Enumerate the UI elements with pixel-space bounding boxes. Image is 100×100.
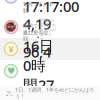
staticText: 1日、1週間、1年をめどにがんばろう！ xyxy=(15,86,94,100)
staticText: 延びた寿命 xyxy=(23,29,48,36)
button[interactable]: ¥ xyxy=(0,38,100,60)
button[interactable]: ♥ xyxy=(0,60,100,82)
staticText: 16日0時間27分 xyxy=(23,36,54,100)
button[interactable]: 🚭 xyxy=(0,16,100,38)
staticText: 96,462円 xyxy=(23,42,54,81)
staticText: 節約できた金額 xyxy=(23,22,38,42)
staticText: ※価格は変更される場合があります。 xyxy=(40,17,56,42)
staticText: 禁煙できた本数 xyxy=(23,1,53,14)
staticText: ♥ xyxy=(7,66,15,76)
button[interactable]: ⏱ xyxy=(0,0,100,16)
staticText: 209日17:17:00 xyxy=(23,0,79,16)
staticText: 4,194本 xyxy=(23,14,51,53)
staticText: 🚭 xyxy=(5,22,17,32)
staticText: ¥ xyxy=(8,43,13,55)
staticText: 🚬 xyxy=(6,90,13,96)
